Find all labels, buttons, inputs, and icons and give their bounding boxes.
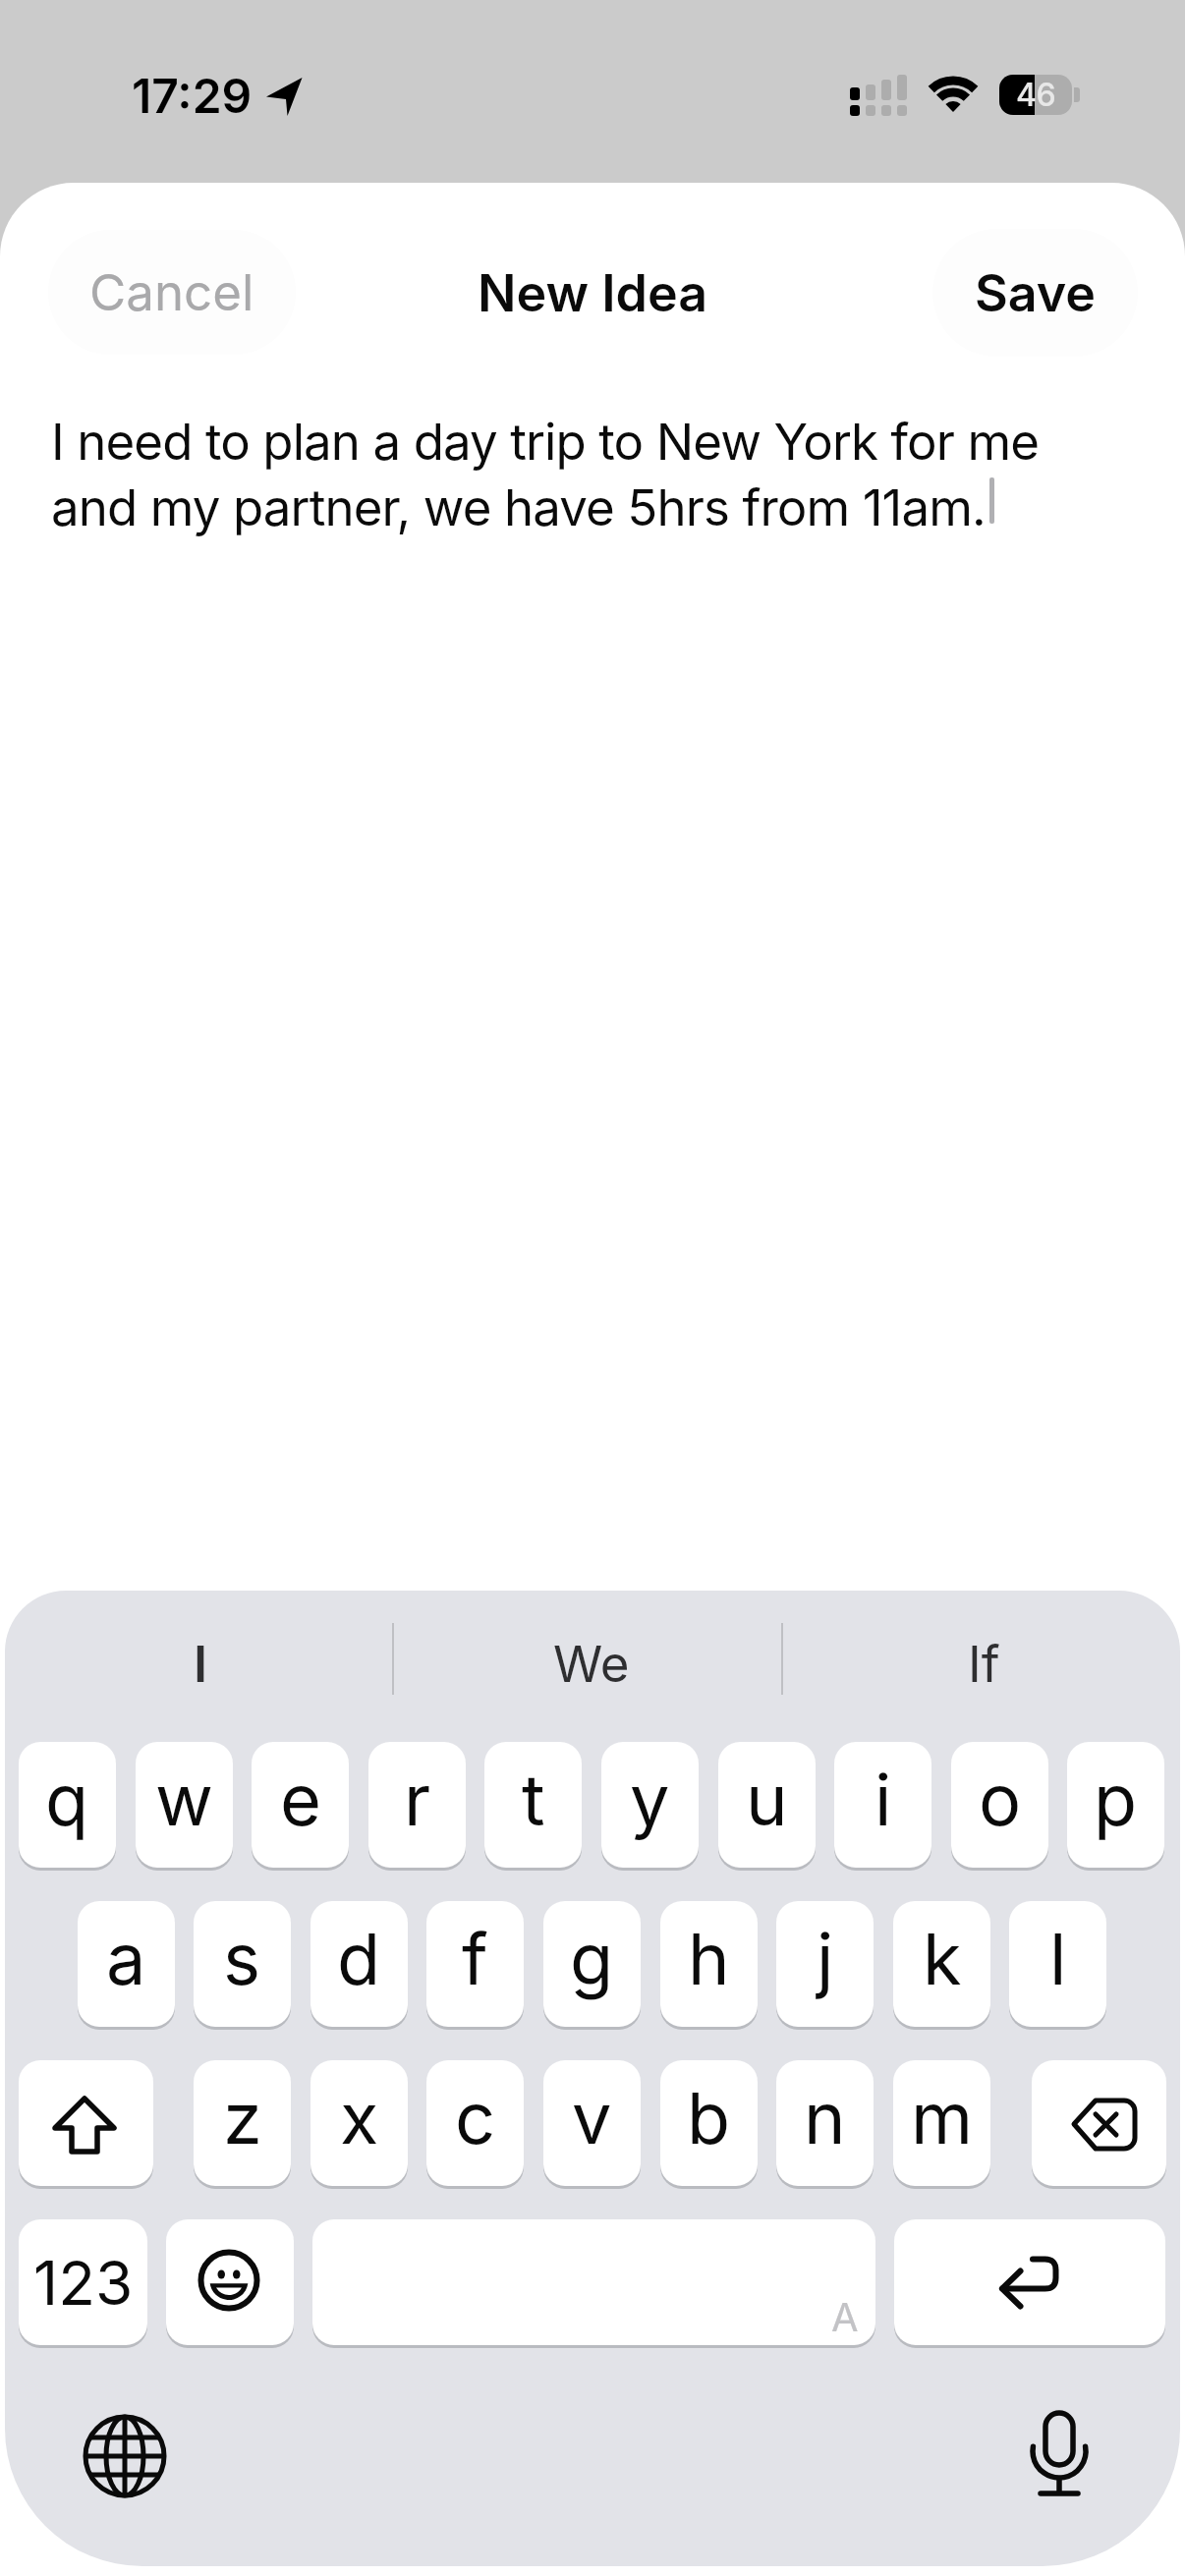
button[interactable]: q	[19, 1742, 116, 1868]
staticText: Save	[975, 262, 1097, 324]
staticText: Cancel	[89, 262, 254, 323]
button[interactable]: l	[1009, 1901, 1106, 2027]
button[interactable]	[312, 2219, 875, 2345]
button[interactable]	[76, 2407, 174, 2505]
staticText: If	[968, 1634, 1000, 1695]
button[interactable]: v	[543, 2060, 641, 2186]
button[interactable]: Save	[932, 229, 1138, 357]
button[interactable]: x	[310, 2060, 408, 2186]
button[interactable]	[1010, 2407, 1108, 2505]
staticText: z	[223, 2075, 262, 2160]
button[interactable]: w	[136, 1742, 233, 1868]
button[interactable]: f	[426, 1901, 524, 2027]
staticText: f	[462, 1916, 488, 2001]
button[interactable]: i	[834, 1742, 931, 1868]
staticText: We	[553, 1634, 630, 1695]
staticText: o	[979, 1757, 1022, 1842]
button[interactable]: b	[660, 2060, 758, 2186]
staticText: c	[455, 2075, 496, 2160]
staticText: b	[687, 2075, 731, 2160]
button[interactable]: z	[194, 2060, 291, 2186]
staticText: 46	[1016, 76, 1056, 114]
button[interactable]: e	[252, 1742, 349, 1868]
staticText: g	[570, 1916, 614, 2001]
button[interactable]: a	[78, 1901, 175, 2027]
button[interactable]: k	[893, 1901, 990, 2027]
button[interactable]: c	[426, 2060, 524, 2186]
button[interactable]: g	[543, 1901, 641, 2027]
button[interactable]: n	[776, 2060, 874, 2186]
button[interactable]: t	[484, 1742, 582, 1868]
button[interactable]: r	[368, 1742, 466, 1868]
button[interactable]: If	[787, 1605, 1180, 1723]
staticText: j	[817, 1916, 834, 2001]
button[interactable]	[894, 2219, 1165, 2345]
staticText: i	[875, 1757, 892, 1842]
staticText: h	[688, 1916, 730, 2001]
staticText: I	[194, 1634, 208, 1695]
staticText: New Idea	[478, 262, 708, 324]
staticText: v	[572, 2075, 612, 2160]
button[interactable]: m	[893, 2060, 990, 2186]
staticText: w	[155, 1757, 213, 1842]
staticText: 17:29	[132, 67, 253, 124]
button[interactable]: d	[310, 1901, 408, 2027]
button[interactable]: We	[396, 1605, 787, 1723]
button[interactable]: I	[5, 1605, 396, 1723]
button[interactable]	[166, 2219, 294, 2345]
button[interactable]	[1032, 2060, 1166, 2186]
staticText: x	[340, 2075, 379, 2160]
staticText: r	[404, 1757, 431, 1842]
button[interactable]	[19, 2060, 153, 2186]
staticText: n	[804, 2075, 846, 2160]
button[interactable]: o	[951, 1742, 1048, 1868]
button[interactable]: u	[718, 1742, 816, 1868]
staticText: k	[923, 1916, 962, 2001]
staticText: a	[106, 1916, 146, 2001]
button[interactable]: j	[776, 1901, 874, 2027]
staticText: e	[280, 1757, 321, 1842]
staticText: A	[831, 2293, 859, 2340]
staticText: u	[746, 1757, 788, 1842]
staticText: p	[1094, 1757, 1138, 1842]
staticText: m	[911, 2075, 974, 2160]
button[interactable]: 123	[19, 2219, 147, 2345]
button[interactable]: s	[194, 1901, 291, 2027]
staticText: I need to plan a day trip to New York fo…	[51, 412, 1040, 537]
staticText: t	[522, 1757, 545, 1842]
button[interactable]: p	[1067, 1742, 1164, 1868]
button[interactable]: h	[660, 1901, 758, 2027]
staticText: l	[1049, 1916, 1067, 2001]
staticText: s	[223, 1916, 261, 2001]
staticText: y	[630, 1757, 670, 1842]
staticText: d	[337, 1916, 381, 2001]
staticText: 123	[33, 2246, 134, 2320]
button[interactable]: y	[601, 1742, 699, 1868]
button[interactable]: Cancel	[48, 230, 296, 355]
staticText: q	[45, 1757, 89, 1842]
